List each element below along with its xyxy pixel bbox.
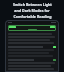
staticText: Comfortable Reading	[13, 14, 52, 19]
button[interactable]	[9, 26, 55, 30]
button[interactable]: Read more	[6, 21, 58, 71]
staticText: and Dark Modes for	[14, 8, 50, 13]
staticText: Switch Between Light	[13, 2, 52, 7]
